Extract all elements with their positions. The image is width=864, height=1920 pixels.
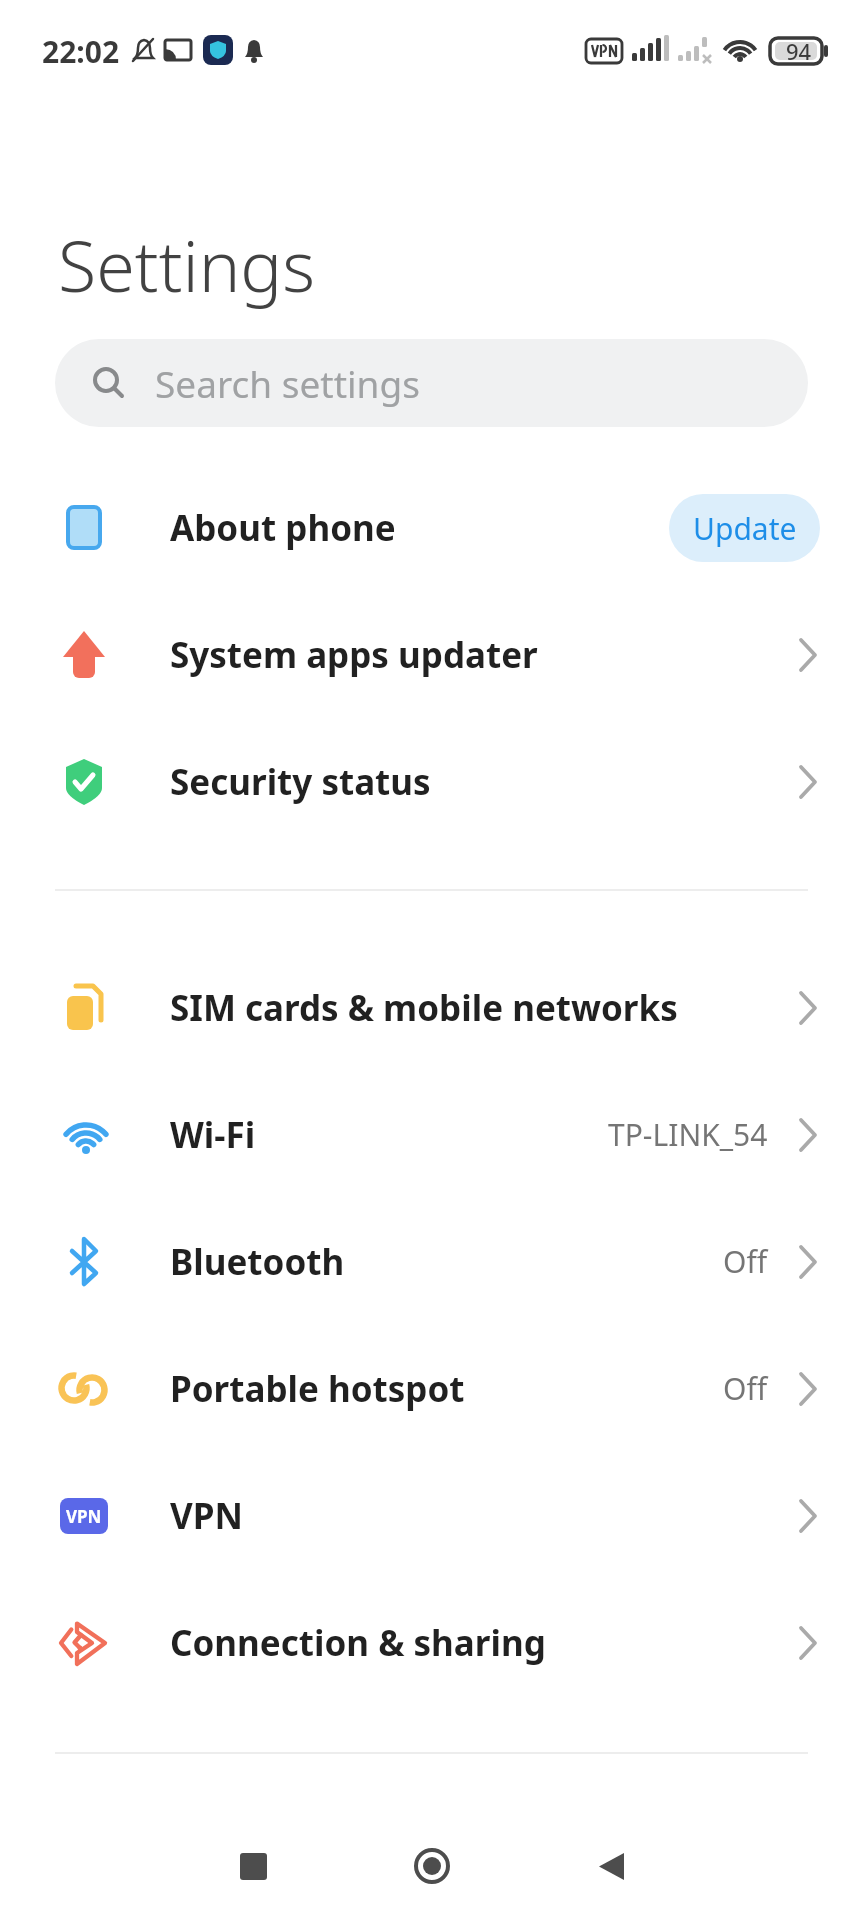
staticText: Off (723, 1368, 768, 1409)
staticText: VPN (170, 1492, 243, 1540)
staticText: System apps updater (170, 631, 538, 679)
staticText: 22:02 (42, 31, 120, 72)
staticText: Wi-Fi (170, 1111, 256, 1159)
staticText: Bluetooth (170, 1238, 345, 1286)
staticText: Security status (170, 758, 431, 806)
button[interactable] (597, 1853, 624, 1880)
button[interactable]: Connection & sharing (0, 1579, 864, 1706)
button[interactable] (240, 1853, 267, 1880)
button[interactable]: VPN (0, 1452, 864, 1579)
staticText: About phone (170, 504, 396, 552)
button[interactable] (412, 1846, 452, 1886)
staticText: TP-LINK_54 (608, 1114, 768, 1155)
button[interactable]: About phone (0, 464, 864, 591)
staticText: Connection & sharing (170, 1619, 546, 1667)
staticText: Update (693, 508, 797, 549)
staticText: 94 (786, 36, 812, 66)
staticText: VPN (66, 1505, 102, 1528)
button[interactable]: Security status (0, 718, 864, 845)
button[interactable]: SIM cards & mobile networks (0, 944, 864, 1071)
staticText: Search settings (155, 358, 420, 408)
staticText: SIM cards & mobile networks (170, 984, 678, 1032)
button[interactable]: Bluetooth (0, 1198, 864, 1325)
button[interactable]: Wi-Fi (0, 1071, 864, 1198)
staticText: Portable hotspot (170, 1365, 465, 1413)
button[interactable]: Update (669, 494, 820, 562)
staticText: Settings (58, 217, 316, 312)
staticText: Off (723, 1241, 768, 1282)
button[interactable]: Portable hotspot (0, 1325, 864, 1452)
button[interactable]: Search settings (55, 339, 808, 427)
button[interactable]: System apps updater (0, 591, 864, 718)
